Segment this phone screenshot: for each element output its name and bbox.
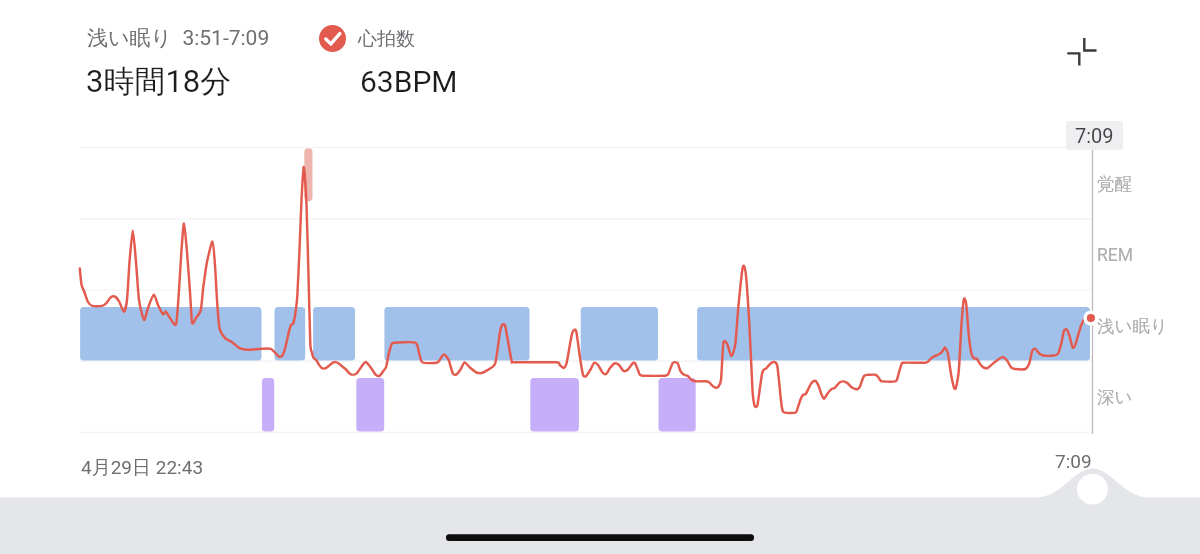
staticText: 7:09	[1075, 124, 1114, 147]
staticText: 深い	[1097, 386, 1133, 408]
staticText: REM	[1097, 245, 1134, 266]
button[interactable]: Exit full screen	[1055, 18, 1109, 72]
staticText: 7:09	[1055, 450, 1092, 472]
button[interactable]: 心拍数	[319, 25, 415, 52]
staticText: 63BPM	[360, 64, 458, 99]
staticText: 3時間18分	[86, 62, 232, 101]
staticText: 心拍数	[358, 27, 415, 51]
staticText: 4月29日 22:43	[81, 456, 204, 480]
staticText: 覚醒	[1097, 173, 1132, 195]
staticText: 浅い眠り	[1097, 315, 1168, 337]
staticText: 浅い眠り 3:51-7:09	[87, 25, 270, 51]
